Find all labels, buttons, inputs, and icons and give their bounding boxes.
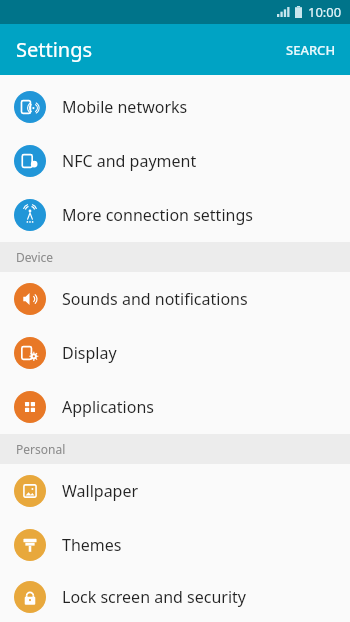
button[interactable]: More connection settings (0, 188, 350, 242)
staticText: SEARCH (286, 41, 336, 59)
button[interactable]: Lock screen and security (0, 572, 350, 622)
staticText: Display (62, 342, 117, 364)
button[interactable]: SEARCH (272, 24, 350, 75)
staticText: 10:00 (308, 3, 342, 21)
staticText: More connection settings (62, 204, 253, 226)
button[interactable]: Sounds and notifications (0, 272, 350, 326)
staticText: Settings (16, 36, 93, 63)
button[interactable]: Mobile networks (0, 80, 350, 134)
staticText: Themes (62, 534, 122, 556)
staticText: Personal (16, 441, 66, 457)
staticText: Wallpaper (62, 480, 139, 502)
button[interactable]: Wallpaper (0, 464, 350, 518)
button[interactable]: NFC and payment (0, 134, 350, 188)
button[interactable]: Applications (0, 380, 350, 434)
button[interactable]: Display (0, 326, 350, 380)
staticText: Sounds and notifications (62, 288, 248, 310)
staticText: Lock screen and security (62, 586, 246, 608)
staticText: Applications (62, 396, 154, 418)
staticText: NFC and payment (62, 150, 197, 172)
staticText: Device (16, 249, 54, 265)
staticText: Mobile networks (62, 96, 188, 118)
button[interactable]: Themes (0, 518, 350, 572)
